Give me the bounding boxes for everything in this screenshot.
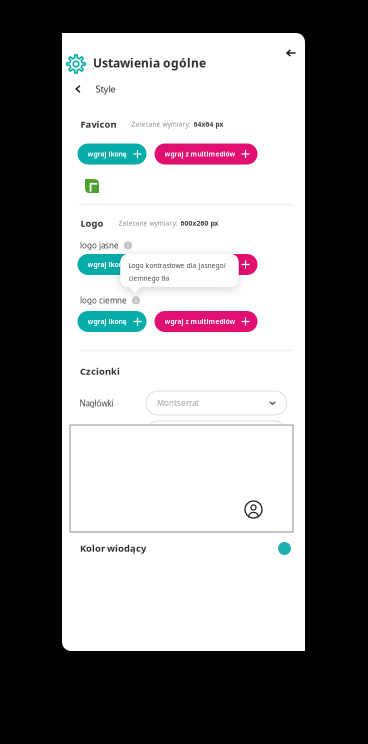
staticText: wgraj ikonę bbox=[87, 150, 126, 158]
button[interactable]: wgraj z multimediów bbox=[154, 311, 257, 332]
staticText: Nagłówki bbox=[79, 398, 113, 409]
button[interactable]: Zamknij bbox=[278, 40, 304, 66]
staticText: Montserrat bbox=[157, 398, 199, 408]
button[interactable]: Style bbox=[70, 79, 140, 99]
staticText: logo ciemne bbox=[80, 295, 127, 306]
staticText: 64x64 px bbox=[193, 120, 223, 129]
staticText: wgraj z multimediów bbox=[164, 260, 235, 269]
staticText: Ustawienia ogólne bbox=[93, 55, 206, 71]
button[interactable]: wgraj ikonę bbox=[77, 254, 146, 275]
button[interactable]: wgraj ikonę bbox=[77, 143, 146, 164]
button[interactable]: wgraj z multimediów bbox=[154, 143, 257, 164]
staticText: wgraj ikonę bbox=[87, 317, 126, 326]
button[interactable]: Montserrat bbox=[146, 391, 287, 415]
staticText: wgraj z multimediów bbox=[164, 150, 235, 158]
staticText: Zalecane wymiary: bbox=[131, 120, 190, 129]
staticText: ciemnego tła bbox=[128, 274, 169, 283]
staticText: wgraj ikonę bbox=[87, 260, 126, 269]
staticText: logo jasne bbox=[80, 240, 119, 251]
staticText: Logo bbox=[80, 217, 103, 229]
staticText: Zalecane wymiary: bbox=[118, 219, 177, 228]
staticText: Style bbox=[95, 83, 115, 95]
staticText: 600x260 px bbox=[180, 219, 218, 228]
staticText: Kolor wiodący bbox=[80, 542, 146, 554]
staticText: Favicon bbox=[80, 118, 116, 130]
staticText: wgraj z multimediów bbox=[164, 317, 235, 326]
staticText: Czcionki bbox=[80, 365, 120, 377]
staticText: Logo kontrastowe dla jasnego/ bbox=[128, 261, 225, 270]
button[interactable]: Kolor wiodący bbox=[278, 542, 291, 555]
button[interactable]: wgraj ikonę bbox=[77, 311, 146, 332]
button[interactable]: wgraj z multimediów bbox=[154, 254, 257, 275]
